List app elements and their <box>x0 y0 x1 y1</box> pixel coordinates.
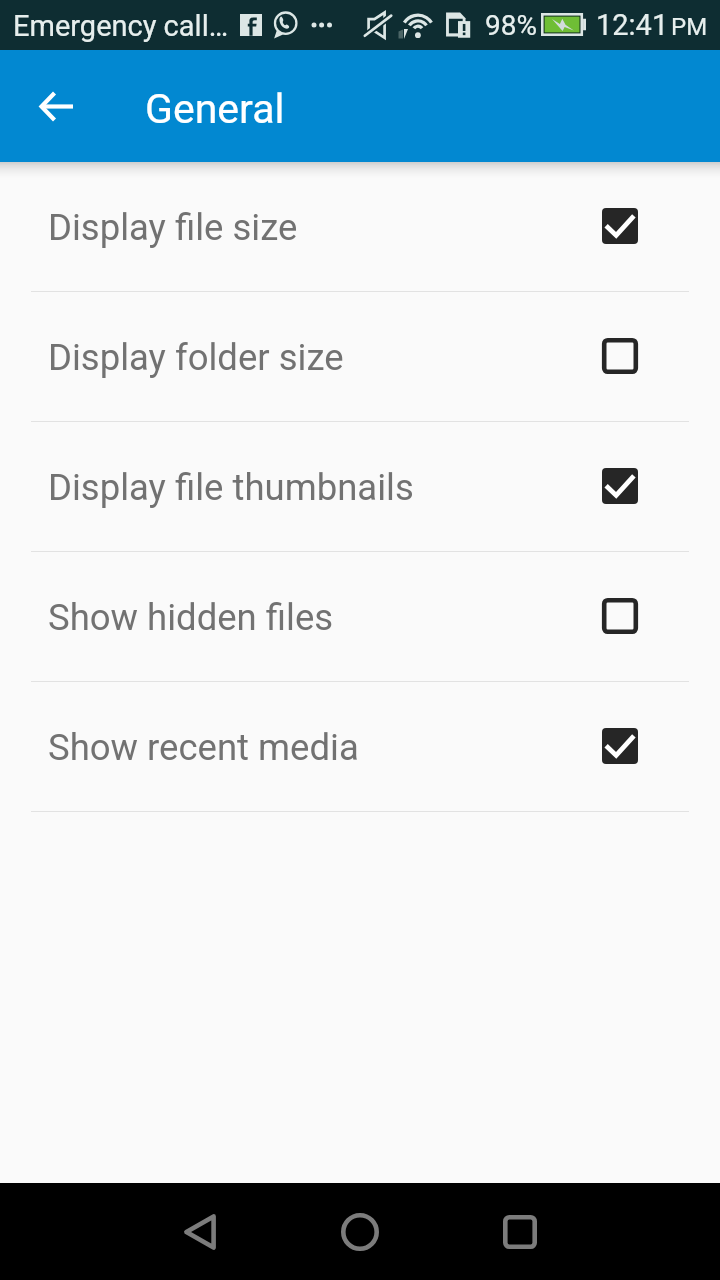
button[interactable]: Display file size <box>0 162 720 292</box>
staticText: Display folder size <box>48 336 344 379</box>
staticText: 12:41 <box>596 8 669 42</box>
staticText: Display file thumbnails <box>48 466 414 509</box>
button[interactable]: Navigate up <box>16 70 96 142</box>
button[interactable]: Recent apps <box>480 1183 560 1280</box>
staticText: General <box>145 85 285 133</box>
button[interactable]: Display folder size <box>0 292 720 422</box>
button[interactable]: Home <box>320 1183 400 1280</box>
staticText: Show recent media <box>48 726 359 769</box>
staticText: Emergency call… <box>13 9 229 43</box>
staticText: Show hidden files <box>48 596 334 639</box>
button[interactable]: Back <box>160 1183 240 1280</box>
button[interactable]: Display file thumbnails <box>0 422 720 552</box>
button[interactable]: Show recent media <box>0 682 720 812</box>
staticText: 98% <box>485 9 537 42</box>
staticText: Display file size <box>48 206 298 249</box>
button[interactable]: Show hidden files <box>0 552 720 682</box>
staticText: PM <box>671 13 708 41</box>
